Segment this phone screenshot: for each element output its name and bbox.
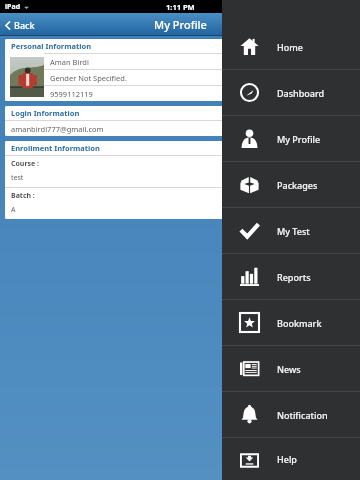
button[interactable]: Dashboard <box>222 70 360 115</box>
staticText: Back <box>14 19 35 31</box>
button[interactable]: Home <box>222 24 360 69</box>
staticText: Notification <box>277 409 328 421</box>
button[interactable]: My Test <box>222 208 360 253</box>
staticText: iPad <box>5 2 21 12</box>
button[interactable]: Back <box>0 16 40 34</box>
staticText: Dashboard <box>277 87 325 99</box>
staticText: My Profile <box>277 133 321 145</box>
button[interactable]: Reports <box>222 254 360 299</box>
staticText: Packages <box>277 179 318 191</box>
button[interactable]: My Profile <box>222 116 360 161</box>
staticText: My Profile <box>154 17 207 32</box>
staticText: News <box>277 363 301 375</box>
staticText: My Test <box>277 225 310 237</box>
staticText: test <box>11 173 24 183</box>
staticText: Aman Birdi <box>50 57 89 67</box>
staticText: 1:11 PM <box>166 2 195 12</box>
staticText: Gender Not Specified. <box>50 73 127 83</box>
staticText: A <box>11 205 16 215</box>
staticText: 9599112119 <box>50 89 93 99</box>
button[interactable]: Packages <box>222 162 360 207</box>
staticText: Enrollment Information <box>11 143 100 153</box>
staticText: Bookmark <box>277 317 322 329</box>
button[interactable]: Bookmark <box>222 300 360 345</box>
button[interactable]: News <box>222 346 360 391</box>
staticText: amanbirdi777@gmail.com <box>11 124 104 134</box>
staticText: Home <box>277 41 303 53</box>
button[interactable]: Help <box>222 438 360 480</box>
staticText: Course : <box>11 159 40 169</box>
staticText: Reports <box>277 271 311 283</box>
staticText: Login Information <box>11 108 80 118</box>
staticText: Help <box>277 453 297 465</box>
staticText: Batch : <box>11 191 35 201</box>
button[interactable]: Notification <box>222 392 360 437</box>
staticText: Personal Information <box>11 41 92 51</box>
